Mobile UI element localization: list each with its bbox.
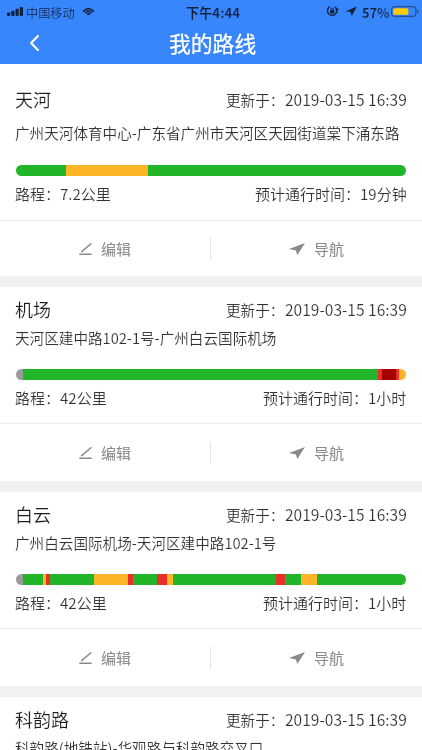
staticText: 导航 <box>314 238 345 260</box>
button[interactable]: 编辑 <box>0 629 210 686</box>
staticText: 预计通行时间：1小时 <box>263 592 407 614</box>
staticText: 2019-03-15 16:39 <box>285 503 407 525</box>
staticText: 编辑 <box>101 442 132 464</box>
staticText: 路程：42公里 <box>15 387 107 409</box>
staticText: 预计通行时间：19分钟 <box>255 183 407 205</box>
staticText: 预计通行时间：1小时 <box>263 387 407 409</box>
staticText: 我的路线 <box>169 27 257 59</box>
staticText: 下午4:44 <box>186 3 241 22</box>
button[interactable]: 白云 <box>0 492 422 686</box>
button[interactable]: 编辑 <box>0 424 210 481</box>
button[interactable]: 机场 <box>0 287 422 481</box>
staticText: 更新于： <box>226 89 285 110</box>
staticText: 天河 <box>15 86 51 112</box>
button[interactable]: 导航 <box>211 629 422 686</box>
staticText: 2019-03-15 16:39 <box>285 88 407 110</box>
staticText: 导航 <box>314 442 345 464</box>
button[interactable]: 导航 <box>211 424 422 481</box>
staticText: 科韵路 <box>15 706 69 732</box>
staticText: 更新于： <box>226 709 285 730</box>
staticText: 中国移动 <box>26 4 75 22</box>
staticText: 57% <box>362 3 390 22</box>
staticText: 更新于： <box>226 504 285 525</box>
staticText: 编辑 <box>101 647 132 669</box>
button[interactable]: 天河 <box>0 64 422 276</box>
button[interactable]: 导航 <box>211 221 422 276</box>
staticText: 广州白云国际机场-天河区建中路102-1号 <box>15 532 277 553</box>
button[interactable]: 科韵路 <box>0 697 422 750</box>
staticText: 机场 <box>15 296 51 322</box>
staticText: 路程：42公里 <box>15 592 107 614</box>
button[interactable]: 返回 <box>0 22 52 64</box>
staticText: 更新于： <box>226 299 285 320</box>
staticText: 广州天河体育中心-广东省广州市天河区天园街道棠下涌东路 <box>15 122 400 143</box>
staticText: 天河区建中路102-1号-广州白云国际机场 <box>15 327 277 348</box>
button[interactable]: 编辑 <box>0 221 210 276</box>
staticText: 2019-03-15 16:39 <box>285 298 407 320</box>
staticText: 导航 <box>314 647 345 669</box>
staticText: 科韵路(地铁站)-华观路与科韵路交叉口 <box>15 737 264 750</box>
staticText: 编辑 <box>101 238 132 260</box>
staticText: 2019-03-15 16:39 <box>285 708 407 730</box>
staticText: 路程：7.2公里 <box>15 183 111 205</box>
staticText: 白云 <box>15 501 51 527</box>
